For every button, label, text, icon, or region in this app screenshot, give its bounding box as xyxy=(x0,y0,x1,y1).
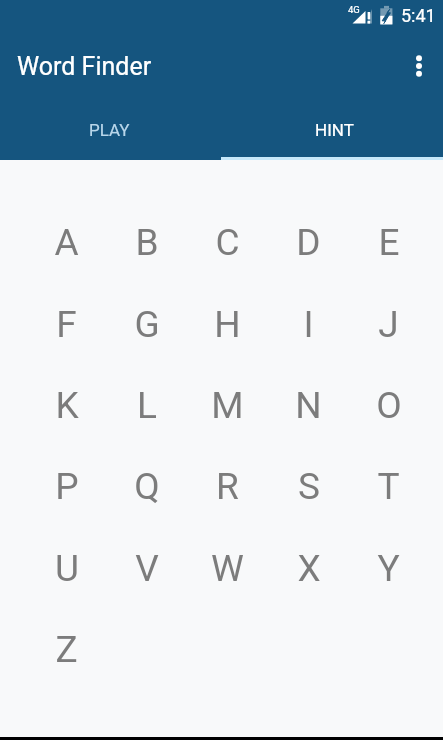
button[interactable]: C xyxy=(187,202,268,283)
staticText: E xyxy=(378,221,400,264)
button[interactable]: G xyxy=(106,284,187,365)
button[interactable]: H xyxy=(187,284,268,365)
button[interactable]: R xyxy=(187,446,268,527)
staticText: U xyxy=(55,547,79,590)
staticText: 4G xyxy=(348,4,360,15)
staticText: D xyxy=(296,221,321,264)
staticText: W xyxy=(211,547,244,590)
button[interactable]: I xyxy=(268,284,349,365)
button[interactable]: S xyxy=(268,446,349,527)
staticText: C xyxy=(215,221,240,264)
staticText: Word Finder xyxy=(17,52,152,81)
staticText: F xyxy=(56,303,77,346)
button[interactable]: M xyxy=(187,365,268,446)
staticText: H xyxy=(214,303,241,346)
staticText: Y xyxy=(377,547,400,590)
button[interactable]: U xyxy=(26,528,107,609)
button[interactable]: P xyxy=(26,446,107,527)
button[interactable]: O xyxy=(348,365,429,446)
staticText: V xyxy=(135,547,159,590)
button[interactable]: T xyxy=(348,446,429,527)
staticText: B xyxy=(135,221,159,264)
staticText: S xyxy=(298,465,320,508)
button[interactable]: D xyxy=(268,202,349,283)
button[interactable]: A xyxy=(26,202,107,283)
staticText: Z xyxy=(55,628,78,671)
button[interactable]: PLAY xyxy=(0,102,221,160)
staticText: Q xyxy=(134,465,160,508)
staticText: X xyxy=(297,547,321,590)
staticText: L xyxy=(137,384,157,427)
button[interactable]: HINT xyxy=(221,102,443,160)
staticText: 5:41 xyxy=(401,5,436,26)
staticText: P xyxy=(55,465,79,508)
staticText: PLAY xyxy=(89,120,130,140)
button[interactable]: N xyxy=(268,365,349,446)
button[interactable]: F xyxy=(26,284,107,365)
button[interactable]: Z xyxy=(26,609,107,690)
staticText: G xyxy=(134,303,160,346)
button[interactable]: Y xyxy=(348,528,429,609)
button[interactable]: W xyxy=(187,528,268,609)
staticText: J xyxy=(378,303,399,346)
staticText: T xyxy=(377,465,400,508)
staticText: A xyxy=(54,221,79,264)
button[interactable]: L xyxy=(106,365,187,446)
button[interactable]: J xyxy=(348,284,429,365)
staticText: M xyxy=(211,384,244,427)
staticText: R xyxy=(216,465,239,508)
staticText: N xyxy=(295,384,322,427)
button[interactable]: More options xyxy=(395,42,443,90)
button[interactable]: K xyxy=(26,365,107,446)
staticText: HINT xyxy=(315,120,354,140)
button[interactable]: X xyxy=(268,528,349,609)
button[interactable]: Q xyxy=(106,446,187,527)
staticText: I xyxy=(303,303,314,346)
button[interactable]: E xyxy=(348,202,429,283)
staticText: O xyxy=(376,384,402,427)
button[interactable]: V xyxy=(106,528,187,609)
button[interactable]: B xyxy=(106,202,187,283)
staticText: K xyxy=(55,384,79,427)
